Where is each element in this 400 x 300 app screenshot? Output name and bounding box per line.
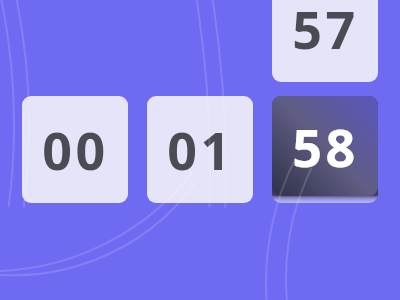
- button[interactable]: Digit card 01: [147, 96, 253, 203]
- staticText: 00: [42, 114, 109, 185]
- button[interactable]: Digit card 00: [22, 96, 128, 203]
- button[interactable]: Flipping digit card 58: [272, 96, 378, 196]
- staticText: 01: [167, 114, 234, 185]
- staticText: 57: [292, 0, 359, 64]
- button[interactable]: Digit card 57: [272, 0, 378, 82]
- staticText: 58: [292, 111, 359, 182]
